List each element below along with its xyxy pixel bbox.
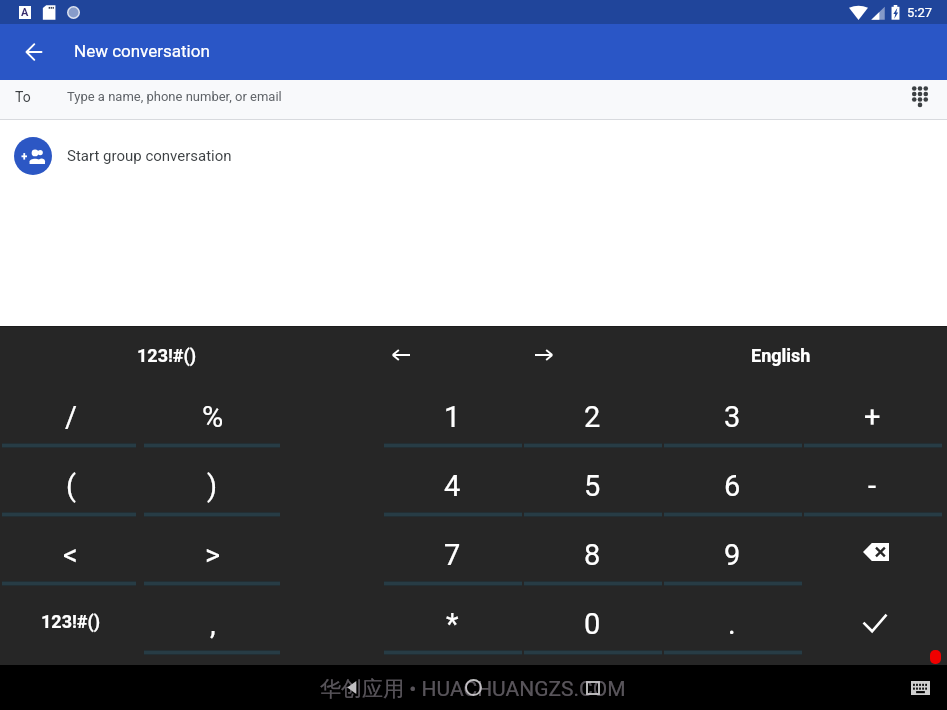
button[interactable]: Back — [6, 24, 62, 80]
staticText: New conversation — [74, 41, 210, 61]
button[interactable]: Back — [328, 665, 374, 710]
staticText: 8 — [584, 538, 601, 572]
button[interactable]: + — [802, 383, 942, 452]
staticText: A — [21, 6, 29, 19]
button[interactable]: Home — [450, 665, 496, 710]
button[interactable] — [802, 590, 942, 659]
button[interactable]: Start group conversation — [0, 120, 947, 192]
button[interactable]: 5 — [522, 452, 662, 521]
staticText: 1 — [444, 400, 461, 434]
button[interactable]: 8 — [522, 521, 662, 590]
staticText: 5:27 — [907, 5, 933, 20]
button[interactable]: 4 — [382, 452, 522, 521]
staticText: To — [15, 89, 31, 105]
button[interactable] — [802, 521, 942, 590]
button[interactable]: , — [145, 590, 280, 659]
button[interactable]: 7 — [382, 521, 522, 590]
button[interactable]: Dialpad — [900, 76, 940, 116]
button[interactable]: - — [802, 452, 942, 521]
staticText: 2 — [584, 400, 601, 434]
button[interactable]: ) — [145, 452, 280, 521]
button[interactable]: < — [3, 521, 138, 590]
staticText: 华创应用 • HUACHUANGZS.COM — [320, 676, 626, 702]
staticText: / — [65, 400, 77, 434]
button[interactable]: % — [145, 383, 280, 452]
button[interactable]: / — [3, 383, 138, 452]
staticText: 123!#() — [137, 345, 197, 366]
staticText: 5 — [584, 469, 601, 503]
staticText: . — [728, 607, 736, 641]
button[interactable]: Recent apps — [570, 665, 616, 710]
staticText: + — [864, 400, 881, 434]
staticText: ( — [66, 469, 76, 503]
staticText: 123!#() — [41, 611, 101, 632]
staticText: English — [751, 345, 811, 366]
staticText: % — [202, 400, 224, 434]
button[interactable]: English — [701, 327, 861, 383]
button[interactable]: * — [382, 590, 522, 659]
staticText: 6 — [724, 469, 741, 503]
button[interactable]: Move cursor right — [509, 327, 579, 383]
button[interactable]: 2 — [522, 383, 662, 452]
staticText: < — [63, 538, 78, 572]
staticText: > — [205, 538, 221, 572]
button[interactable]: 0 — [522, 590, 662, 659]
staticText: Type a name, phone number, or email — [67, 89, 282, 104]
button[interactable]: . — [662, 590, 802, 659]
button[interactable]: 1 — [382, 383, 522, 452]
staticText: 4 — [444, 469, 461, 503]
button[interactable]: 123!#() — [3, 590, 138, 659]
staticText: 0 — [584, 607, 601, 641]
button[interactable]: 6 — [662, 452, 802, 521]
button[interactable]: 3 — [662, 383, 802, 452]
staticText: 3 — [724, 400, 741, 434]
staticText: ) — [207, 469, 218, 503]
staticText: * — [446, 607, 459, 641]
button[interactable]: Switch keyboard — [897, 665, 943, 710]
button[interactable]: > — [145, 521, 280, 590]
staticText: Start group conversation — [67, 147, 232, 165]
staticText: , — [210, 607, 216, 641]
staticText: 9 — [724, 538, 741, 572]
button[interactable]: 123!#() — [0, 327, 334, 383]
button[interactable]: ( — [3, 452, 138, 521]
button[interactable]: Move cursor left — [366, 327, 436, 383]
staticText: - — [868, 469, 877, 503]
staticText: 7 — [444, 538, 461, 572]
button[interactable]: 9 — [662, 521, 802, 590]
